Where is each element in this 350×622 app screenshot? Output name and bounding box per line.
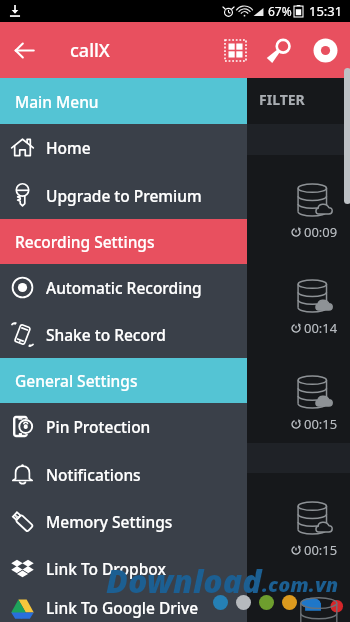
button[interactable]: 00:09 [0,155,350,251]
button[interactable]: FILTER [0,78,350,124]
button[interactable]: Automatic Recording [0,264,247,311]
staticText: Pin Protection [46,416,151,437]
staticText: Main Menu [15,91,99,112]
button[interactable]: Home [0,124,247,171]
staticText: 00:09 [304,223,338,241]
staticText: Recording Settings [15,231,155,252]
staticText: .com.vn [262,571,339,598]
staticText: Link To Google Drive [46,597,199,618]
button[interactable]: Back [0,26,48,74]
staticText: General Settings [15,370,138,391]
button[interactable]: Grid view [214,22,257,78]
button[interactable]: Recording Settings [0,219,247,264]
button[interactable]: Link To Google Drive [0,592,247,622]
staticText: Link To Dropbox [46,558,166,579]
staticText: Upgrade to Premium [46,185,202,206]
button[interactable]: Search [257,22,302,78]
staticText: 00:14 [304,319,338,337]
staticText: 67% [268,3,292,19]
button[interactable]: Pin Protection [0,403,247,450]
button[interactable]: 00:15 [0,473,350,569]
staticText: callX [70,38,110,63]
staticText: Download [106,559,262,603]
staticText: Home [46,137,91,158]
button[interactable]: Main Menu [0,78,247,124]
button[interactable]: Memory Settings [0,498,247,545]
staticText: 15:31 [309,2,343,20]
staticText: 00:15 [304,541,338,559]
button[interactable]: 00:15 [0,347,350,443]
staticText: Notifications [46,464,141,485]
staticText: Automatic Recording [46,277,202,298]
staticText: Memory Settings [46,511,173,532]
button[interactable]: Shake to Record [0,311,247,358]
button[interactable]: 00:14 [0,251,350,347]
button[interactable]: Record [302,22,348,78]
button[interactable]: General Settings [0,358,247,403]
staticText: 00:15 [304,415,338,433]
staticText: FILTER [259,90,305,109]
button[interactable]: Notifications [0,450,247,498]
button[interactable]: Upgrade to Premium [0,171,247,219]
staticText: Shake to Record [46,324,166,345]
button[interactable]: Link To Dropbox [0,545,247,592]
